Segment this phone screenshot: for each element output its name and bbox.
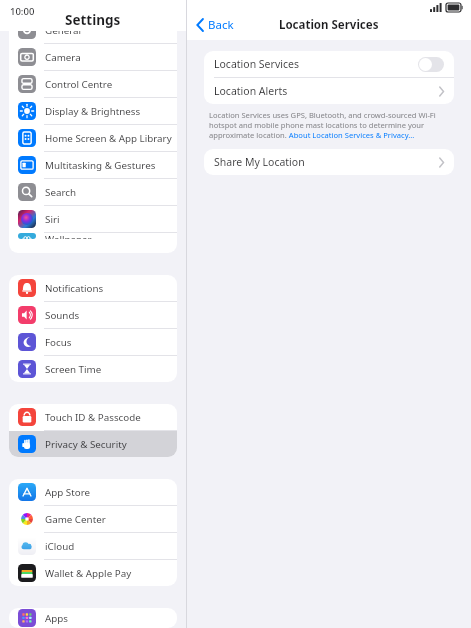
button[interactable]: Notifications [9,275,177,301]
staticText: Settings [65,11,121,29]
staticText: Location Services uses GPS, Bluetooth, a… [209,110,449,140]
staticText: Notifications [45,282,104,295]
staticText: Game Center [45,513,106,526]
staticText: Multitasking & Gestures [45,159,156,172]
button[interactable]: Game Center [9,506,177,532]
staticText: Home Screen & App Library [45,132,172,145]
staticText: Search [45,186,77,199]
staticText: Wallpaper [45,233,92,239]
button[interactable]: Screen Time [9,356,177,382]
staticText: Camera [45,51,81,64]
staticText: Privacy & Security [45,438,127,451]
button[interactable]: Search [9,179,177,205]
button[interactable]: Location Services toggle [418,57,444,72]
staticText: Control Centre [45,78,113,91]
button[interactable]: Share My Location [204,149,454,175]
button[interactable]: Wallet & Apple Pay [9,560,177,586]
button[interactable]: Touch ID & Passcode [9,404,177,430]
staticText: General [45,31,82,37]
button[interactable]: Control Centre [9,71,177,97]
button[interactable]: Camera [9,44,177,70]
button[interactable]: Display & Brightness [9,98,177,124]
staticText: Sounds [45,309,80,322]
button[interactable]: Multitasking & Gestures [9,152,177,178]
staticText: 10:00 [10,5,35,18]
staticText: Location Services [279,17,379,33]
button[interactable]: Apps [9,608,177,628]
button[interactable]: Focus [9,329,177,355]
button[interactable]: Location Services [204,51,454,77]
staticText: Touch ID & Passcode [45,411,141,424]
button[interactable]: Siri [9,206,177,232]
staticText: Location Services [214,57,299,71]
staticText: Apps [45,612,69,625]
staticText: Display & Brightness [45,105,141,118]
staticText: App Store [45,486,91,499]
staticText: Focus [45,336,72,349]
button[interactable]: Wallpaper [9,233,177,239]
button[interactable]: Back [187,14,242,36]
staticText: Back [208,17,234,33]
button[interactable]: Sounds [9,302,177,328]
button[interactable]: Home Screen & App Library [9,125,177,151]
staticText: iCloud [45,540,75,553]
button[interactable]: Privacy & Security [9,431,177,457]
staticText: Location Alerts [214,84,288,98]
staticText: Wallet & Apple Pay [45,567,132,580]
button[interactable]: General [9,31,177,43]
staticText: Share My Location [214,155,305,169]
button[interactable]: iCloud [9,533,177,559]
button[interactable]: Location Alerts [204,78,454,104]
button[interactable]: App Store [9,479,177,505]
staticText: Screen Time [45,363,102,376]
staticText: Siri [45,213,60,226]
